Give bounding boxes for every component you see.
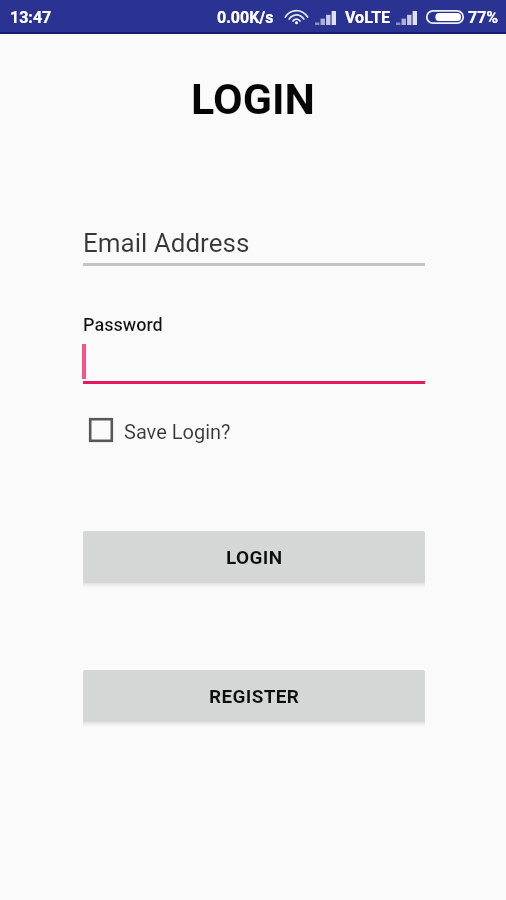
staticText: 0.00K/s: [217, 8, 274, 27]
button[interactable]: REGISTER: [83, 670, 425, 722]
staticText: VoLTE: [345, 8, 391, 27]
button[interactable]: Email Address: [83, 222, 425, 266]
staticText: LOGIN: [0, 74, 506, 124]
staticText: 77%: [468, 8, 499, 27]
staticText: 13:47: [10, 8, 52, 27]
staticText: REGISTER: [209, 685, 300, 707]
button[interactable]: Password: [83, 310, 425, 384]
staticText: LOGIN: [226, 546, 283, 568]
staticText: Password: [83, 314, 163, 335]
button[interactable]: LOGIN: [83, 531, 425, 583]
button[interactable]: Save Login?: [88, 417, 231, 445]
staticText: Save Login?: [124, 420, 231, 443]
staticText: Email Address: [83, 228, 250, 258]
